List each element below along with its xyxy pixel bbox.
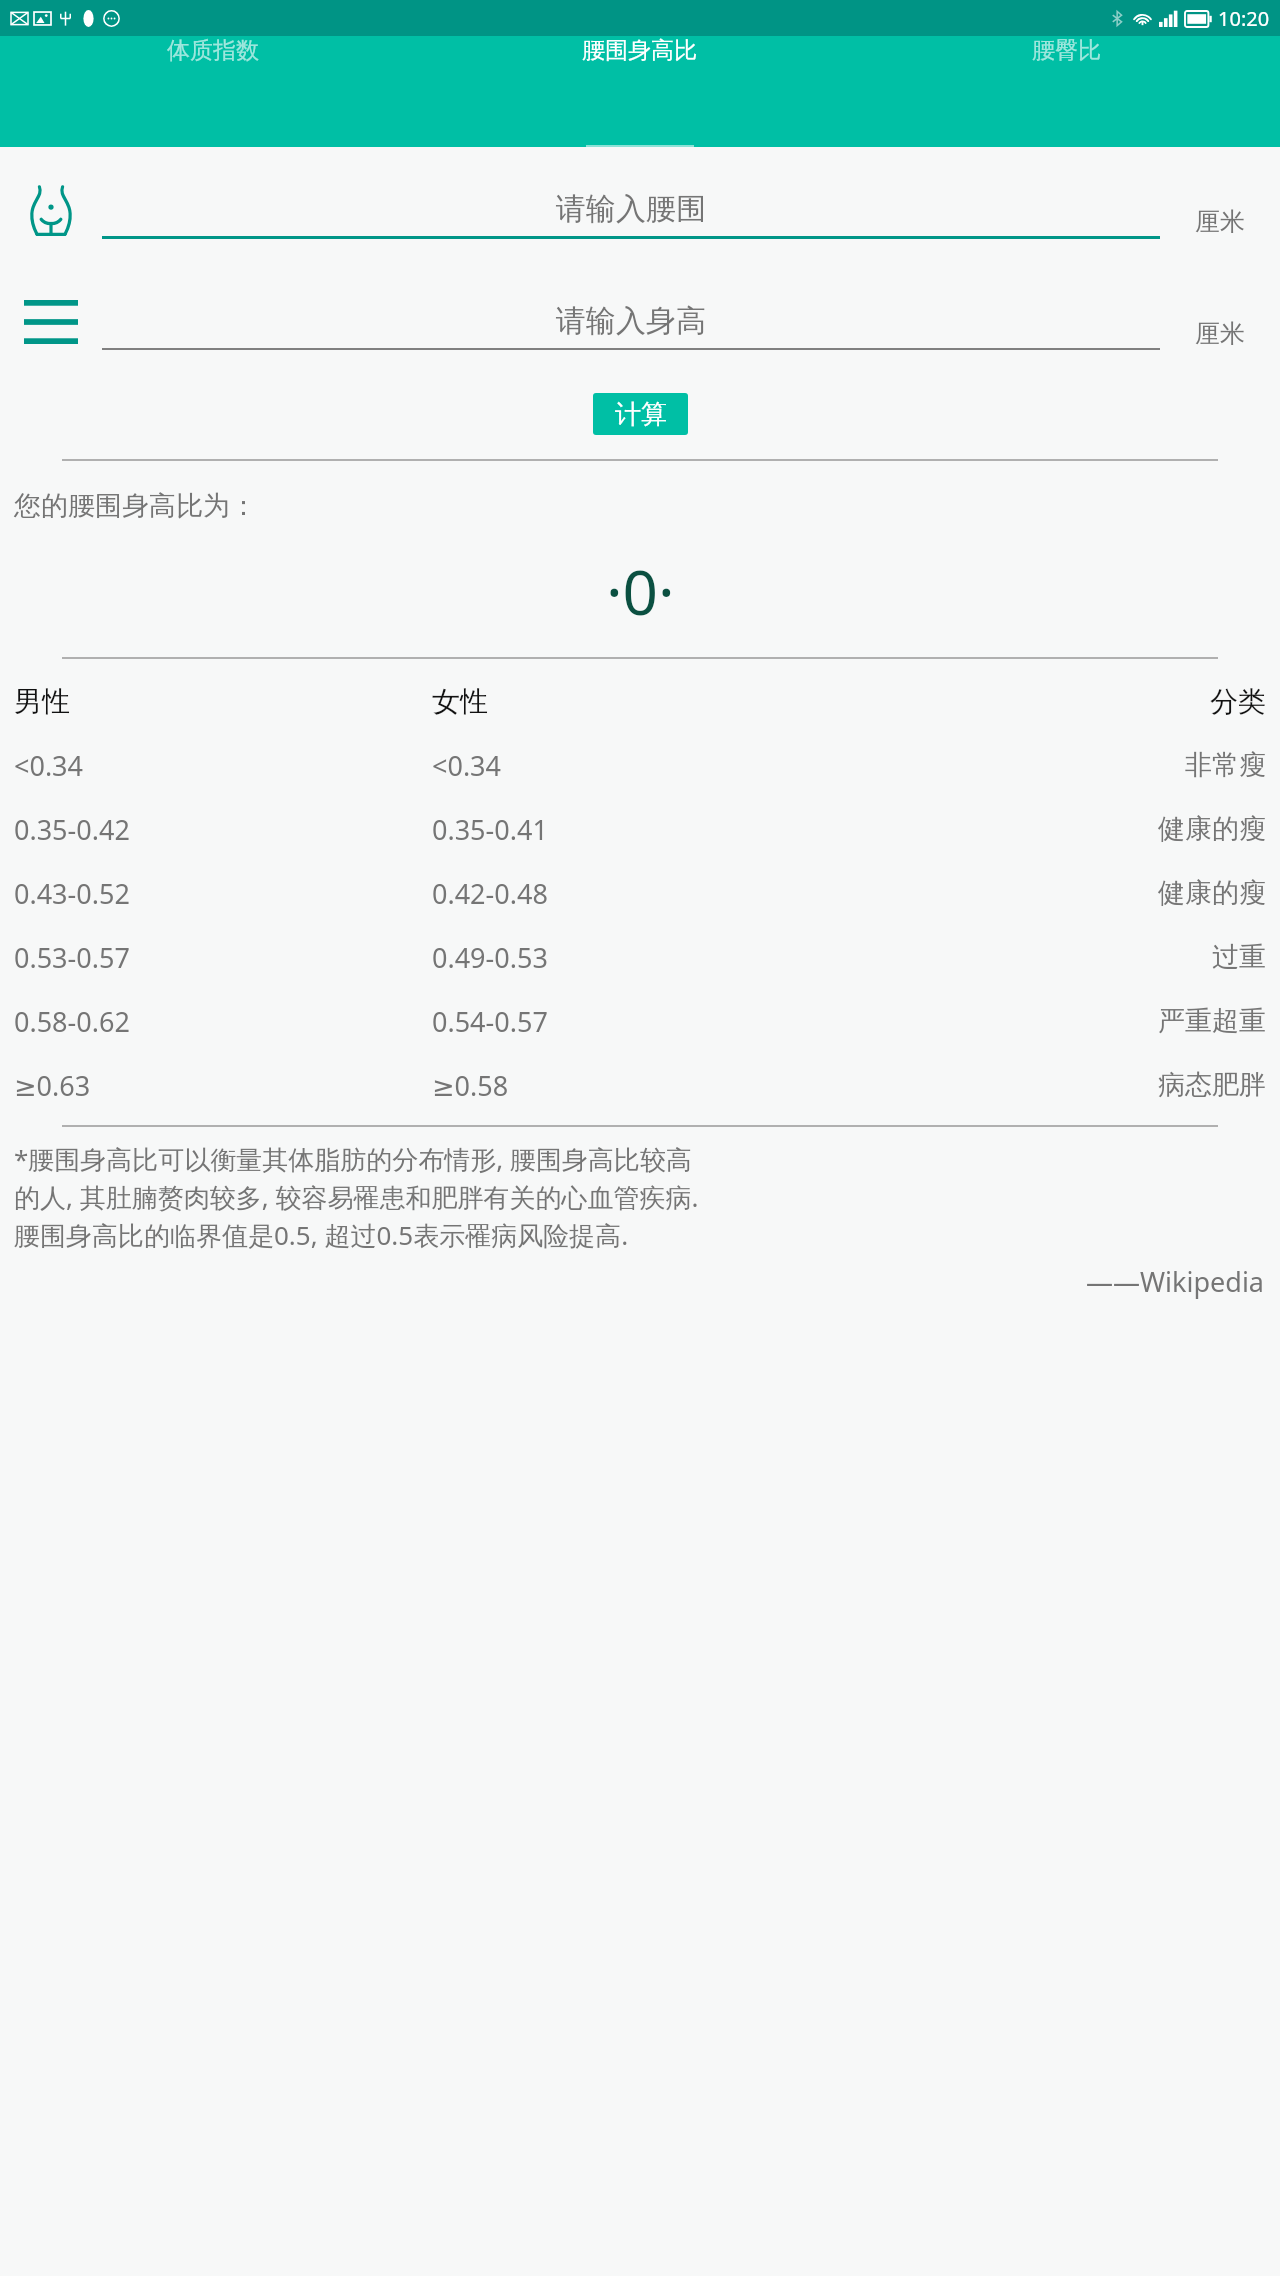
staticText: 0.49-0.53 bbox=[432, 939, 548, 976]
staticText: 请输入身高 bbox=[556, 302, 706, 340]
button[interactable]: 腰围身高比 bbox=[426, 36, 853, 65]
staticText: 厘米 bbox=[1195, 318, 1245, 349]
staticText: 0.43-0.52 bbox=[14, 875, 130, 912]
staticText: 10:20 bbox=[1218, 5, 1270, 32]
staticText: 厘米 bbox=[1195, 206, 1245, 237]
staticText: 0.42-0.48 bbox=[432, 875, 548, 912]
staticText: <0.34 bbox=[432, 747, 502, 784]
staticText: 0.54-0.57 bbox=[432, 1003, 548, 1040]
staticText: 0.35-0.41 bbox=[432, 811, 548, 848]
button[interactable]: 腰臀比 bbox=[853, 36, 1280, 65]
staticText: 0.35-0.42 bbox=[14, 811, 130, 848]
staticText: 非常瘦 bbox=[1185, 748, 1266, 782]
other: Height bbox=[24, 300, 78, 344]
staticText: 0.58-0.62 bbox=[14, 1003, 130, 1040]
staticText: 过重 bbox=[1212, 940, 1266, 974]
staticText: 健康的瘦 bbox=[1158, 812, 1266, 846]
staticText: 健康的瘦 bbox=[1158, 876, 1266, 910]
staticText: ——Wikipedia bbox=[0, 1263, 1264, 1300]
staticText: 男性 bbox=[14, 684, 70, 719]
staticText: <0.34 bbox=[14, 747, 84, 784]
button[interactable]: 计算 bbox=[593, 393, 688, 435]
staticText: *腰围身高比可以衡量其体脂肪的分布情形, 腰围身高比较高 的人, 其肚腩赘肉较多… bbox=[14, 1141, 699, 1253]
button[interactable]: 体质指数 bbox=[0, 36, 426, 65]
staticText: 腰臀比 bbox=[1032, 36, 1101, 65]
staticText: 女性 bbox=[432, 684, 488, 719]
staticText: 计算 bbox=[615, 398, 667, 431]
staticText: 病态肥胖 bbox=[1158, 1068, 1266, 1102]
staticText: 0.53-0.57 bbox=[14, 939, 130, 976]
staticText: ·0· bbox=[606, 549, 675, 633]
staticText: 严重超重 bbox=[1158, 1004, 1266, 1038]
staticText: 分类 bbox=[1210, 684, 1266, 719]
staticText: ≥0.63 bbox=[14, 1067, 91, 1104]
staticText: 腰围身高比 bbox=[582, 36, 697, 65]
staticText: 您的腰围身高比为： bbox=[14, 489, 257, 523]
other: Waist bbox=[22, 181, 80, 239]
staticText: 请输入腰围 bbox=[556, 190, 706, 228]
staticText: ≥0.58 bbox=[432, 1067, 509, 1104]
staticText: 体质指数 bbox=[167, 36, 259, 65]
